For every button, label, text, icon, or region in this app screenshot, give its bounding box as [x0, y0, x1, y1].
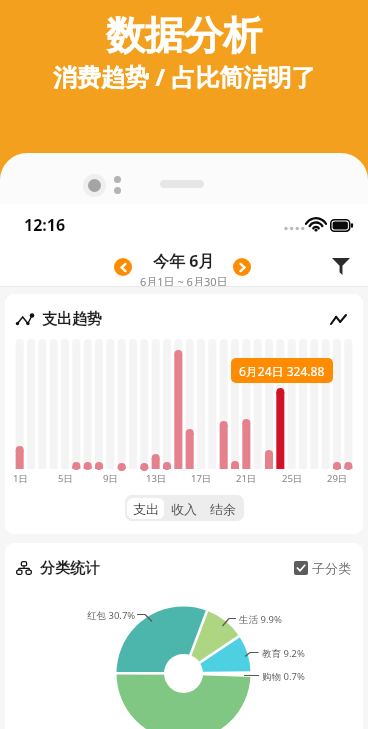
staticText: 收入: [171, 501, 197, 517]
staticText: 13日: [146, 472, 167, 485]
button[interactable]: Previous month: [114, 258, 132, 276]
staticText: 9日: [103, 472, 118, 485]
button[interactable]: 6月24日 324.88: [231, 358, 333, 383]
staticText: 支出: [133, 501, 159, 517]
button[interactable]: Filter: [326, 251, 356, 281]
button[interactable]: 子分类: [294, 560, 351, 576]
staticText: 6月1日 ~ 6月30日: [140, 274, 228, 289]
staticText: 1日: [13, 472, 28, 485]
staticText: 购物 0.7%: [262, 670, 305, 683]
staticText: 教育 9.2%: [262, 647, 305, 660]
staticText: 消费趋势 / 占比简洁明了: [53, 60, 316, 93]
button[interactable]: 支出: [127, 498, 164, 519]
staticText: 5日: [58, 472, 73, 485]
button[interactable]: 结余: [203, 498, 242, 519]
staticText: 支出趋势: [42, 310, 102, 329]
staticText: 今年 6月: [153, 250, 215, 272]
staticText: 25日: [282, 472, 303, 485]
staticText: 生活 9.9%: [239, 613, 282, 626]
staticText: 结余: [210, 501, 236, 517]
button[interactable]: 收入: [164, 498, 203, 519]
staticText: 6月24日 324.88: [239, 363, 325, 379]
staticText: 分类统计: [40, 559, 100, 578]
staticText: 29日: [327, 472, 348, 485]
staticText: 数据分析: [106, 11, 262, 60]
staticText: 17日: [191, 472, 212, 485]
staticText: 12:16: [24, 214, 66, 236]
button[interactable]: Switch to line chart: [325, 306, 351, 332]
staticText: 子分类: [312, 560, 351, 576]
button[interactable]: Next month: [233, 258, 251, 276]
staticText: 21日: [236, 472, 257, 485]
staticText: 红包 30.7%: [87, 609, 136, 622]
